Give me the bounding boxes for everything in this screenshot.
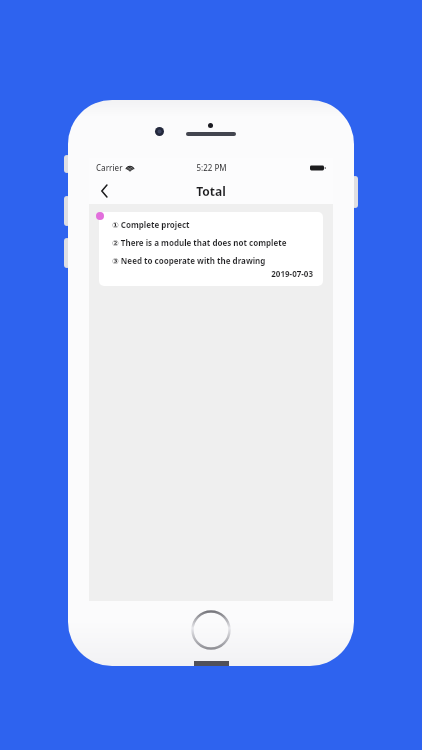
staticText: ② There is a module that does not comple…: [112, 237, 287, 248]
staticText: 5:22 PM: [196, 162, 227, 173]
staticText: Carrier: [96, 162, 123, 173]
staticText: Total: [196, 183, 226, 199]
staticText: ③ Need to cooperate with the drawing: [112, 255, 266, 266]
button[interactable]: Back: [89, 177, 119, 204]
staticText: ① Complete project: [112, 219, 190, 230]
other: Home: [191, 610, 231, 650]
button[interactable]: ① Complete project: [99, 212, 323, 286]
staticText: 2019-07-03: [112, 268, 313, 279]
